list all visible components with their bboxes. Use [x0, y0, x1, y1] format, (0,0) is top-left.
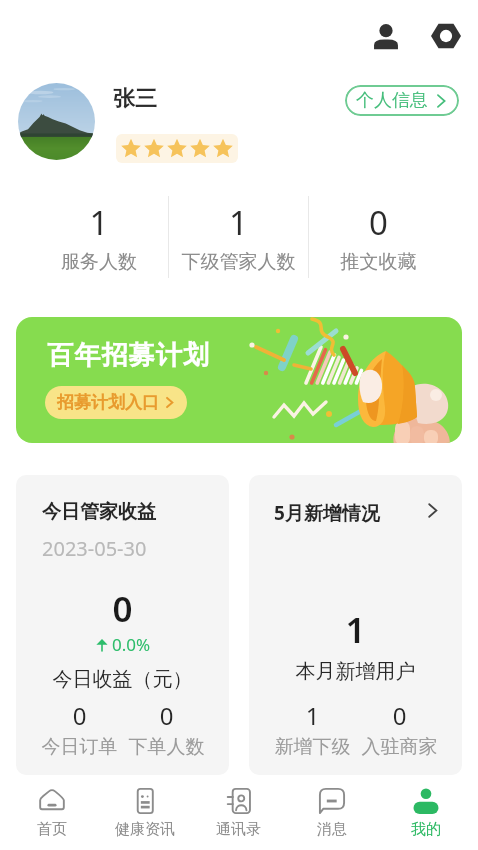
button[interactable]: 5月新增情况 — [249, 475, 462, 775]
staticText: 0 — [123, 699, 210, 732]
button[interactable]: 消息 — [285, 782, 379, 839]
button[interactable]: 百年招募计划 — [16, 317, 462, 443]
button[interactable] — [18, 83, 95, 160]
button[interactable]: 1 — [30, 196, 168, 278]
staticText: 0 — [356, 699, 443, 732]
staticText: 0.0% — [112, 633, 151, 656]
button[interactable]: 0 — [309, 196, 448, 278]
staticText: 0 — [309, 200, 448, 245]
staticText: 1 — [30, 200, 168, 245]
staticText: 新增下级 — [269, 735, 356, 759]
staticText: 1 — [269, 699, 356, 732]
button[interactable]: 我的 — [379, 782, 473, 839]
staticText: 消息 — [317, 820, 347, 839]
staticText: 百年招募计划 — [47, 339, 211, 372]
button[interactable]: 招募计划入口 — [45, 386, 187, 419]
staticText: 1 — [249, 606, 462, 654]
staticText: 首页 — [37, 820, 67, 839]
staticText: 推文收藏 — [309, 250, 448, 274]
button[interactable]: 个人信息 — [345, 85, 459, 116]
button[interactable]: More — [419, 497, 445, 523]
staticText: 2023-05-30 — [42, 535, 147, 562]
button[interactable]: Settings — [424, 14, 468, 58]
staticText: 今日订单 — [36, 735, 123, 759]
button[interactable]: 今日管家收益 — [16, 475, 229, 775]
staticText: 入驻商家 — [356, 735, 443, 759]
staticText: 通讯录 — [216, 820, 261, 839]
staticText: 服务人数 — [30, 250, 168, 274]
staticText: 今日收益（元） — [16, 667, 229, 692]
staticText: 招募计划入口 — [57, 392, 159, 413]
button[interactable]: 通讯录 — [191, 782, 285, 839]
staticText: 1 — [169, 200, 308, 245]
staticText: 个人信息 — [356, 89, 428, 112]
staticText: 健康资讯 — [115, 820, 175, 839]
staticText: 本月新增用户 — [249, 659, 462, 684]
button[interactable]: 1 — [169, 196, 308, 278]
staticText: 0 — [36, 699, 123, 732]
staticText: 下级管家人数 — [169, 250, 308, 274]
button[interactable]: Account — [364, 14, 408, 58]
staticText: 5月新增情况 — [274, 500, 380, 526]
staticText: 下单人数 — [123, 735, 210, 759]
staticText: 我的 — [411, 820, 441, 839]
staticText: 0 — [16, 585, 229, 633]
staticText: 张三 — [113, 85, 157, 113]
button[interactable]: 健康资讯 — [98, 782, 191, 839]
staticText: 今日管家收益 — [42, 500, 156, 524]
button[interactable]: 首页 — [5, 782, 98, 839]
